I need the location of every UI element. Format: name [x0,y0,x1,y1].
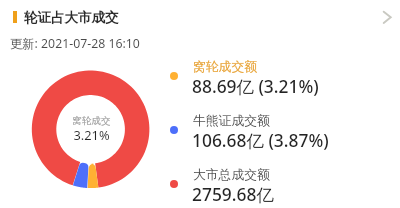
staticText: 更新: 2021-07-28 16:10 [10,35,140,52]
button[interactable]: More [378,5,400,29]
staticText: 106.68亿 (3.87%) [192,128,329,152]
staticText: 3.21% [73,126,110,143]
staticText: 牛熊证成交额 [193,113,270,129]
button[interactable] [168,162,388,206]
button[interactable] [168,108,388,152]
staticText: 窝轮成交额 [193,59,257,75]
staticText: 轮证占大市成交 [24,9,119,26]
staticText: 88.69亿 (3.21%) [192,74,319,98]
staticText: 窝轮成交 [72,115,111,127]
button[interactable] [168,54,388,98]
button[interactable] [0,0,400,208]
staticText: 大市总成交额 [193,167,270,183]
staticText: 2759.68亿 [192,182,274,206]
